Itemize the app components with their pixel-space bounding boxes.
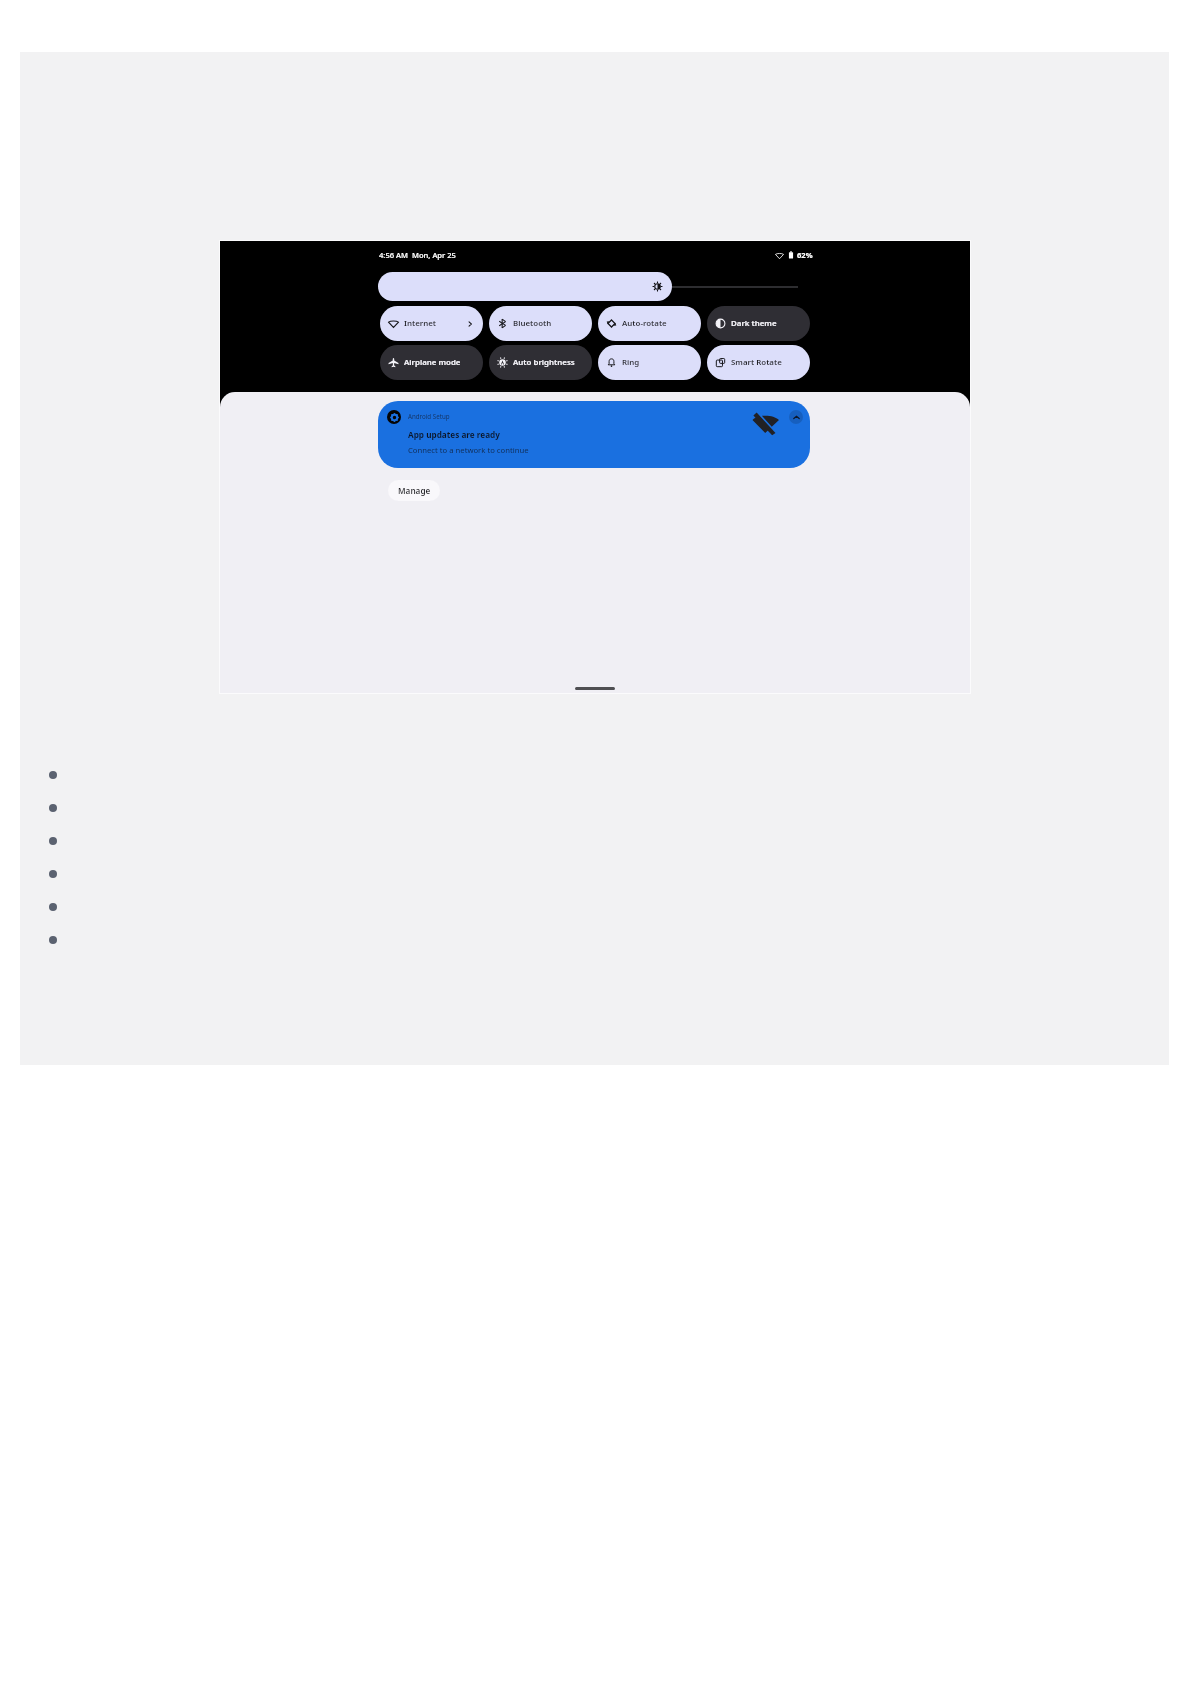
- staticText: 62%: [797, 250, 813, 260]
- staticText: Smart Rotate: [731, 357, 782, 368]
- button[interactable]: Collapse notification: [789, 410, 803, 424]
- button[interactable]: Manage: [388, 480, 440, 501]
- staticText: App updates are ready: [408, 429, 500, 440]
- staticText: Internet: [404, 318, 437, 329]
- button[interactable]: Internet: [380, 306, 483, 341]
- staticText: Ring: [622, 357, 640, 368]
- staticText: Airplane mode: [404, 357, 461, 368]
- staticText: Auto brightness: [513, 357, 575, 368]
- staticText: 4:56 AM Mon, Apr 25: [379, 250, 456, 260]
- staticText: Android Setup: [408, 412, 450, 420]
- staticText: Dark theme: [731, 318, 777, 329]
- staticText: Manage: [398, 485, 431, 496]
- staticText: Connect to a network to continue: [408, 445, 529, 455]
- button[interactable]: Auto-rotate: [598, 306, 701, 341]
- staticText: Auto-rotate: [622, 318, 667, 329]
- button[interactable]: Airplane mode: [380, 345, 483, 380]
- button[interactable]: Android Setup: [378, 401, 810, 468]
- button[interactable]: Bluetooth: [489, 306, 592, 341]
- button[interactable]: Dark theme: [707, 306, 810, 341]
- staticText: Bluetooth: [513, 318, 552, 329]
- button[interactable]: Brightness: [378, 272, 672, 301]
- button[interactable]: Auto brightness: [489, 345, 592, 380]
- button[interactable]: Smart Rotate: [707, 345, 810, 380]
- button[interactable]: Ring: [598, 345, 701, 380]
